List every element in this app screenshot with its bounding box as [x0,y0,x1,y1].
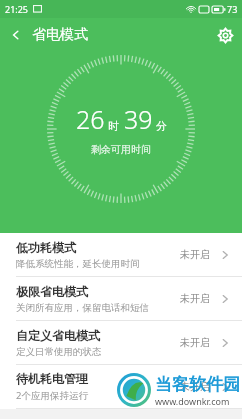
button[interactable]: 自定义省电模式 [0,321,242,364]
staticText: 时 [108,119,119,133]
staticText: 降低系统性能，延长使用时间 [16,258,140,270]
staticText: www.downkr.com [155,395,230,407]
staticText: 省电模式 [32,26,88,44]
button[interactable]: Settings [208,18,242,52]
staticText: 自定义省电模式 [16,328,100,343]
button[interactable]: 低功耗模式 [0,233,242,276]
button[interactable]: Back [0,18,96,52]
button[interactable]: 极限省电模式 [0,277,242,320]
button[interactable]: 待机耗电管理 [0,365,242,408]
staticText: 低功耗模式 [16,240,76,255]
staticText: 未开启 [180,336,210,349]
staticText: 73 [227,3,238,15]
staticText: 关闭所有应用，保留电话和短信 [16,302,149,314]
staticText: 21:25 [5,3,29,15]
staticText: 极限省电模式 [16,284,88,299]
staticText: 定义日常使用的状态 [16,346,102,358]
staticText: 未开启 [180,248,210,261]
staticText: 26 [76,102,105,136]
staticText: 剩余可用时间 [91,143,151,156]
staticText: 待机耗电管理 [16,371,88,386]
staticText: 39 [124,102,153,136]
staticText: 2个应用保持运行 [16,389,88,402]
staticText: 未开启 [180,292,210,305]
staticText: 当客软件园 [155,374,240,395]
staticText: 分 [156,119,167,133]
staticText: 未开启 [180,380,210,393]
